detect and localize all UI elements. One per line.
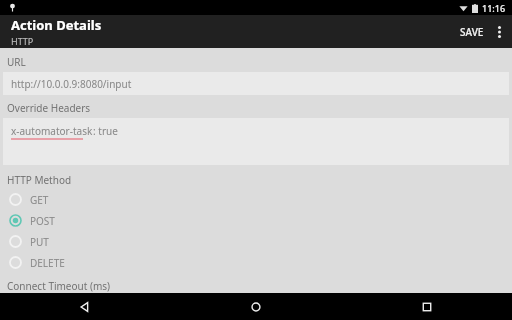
- button[interactable]: x-automator-task: [3, 118, 509, 165]
- button[interactable]: Home: [170, 293, 341, 320]
- staticText: http://10.0.0.9:8080/input: [11, 77, 132, 91]
- staticText: Connect Timeout (ms): [7, 279, 111, 293]
- button[interactable]: More options: [491, 20, 508, 44]
- button[interactable]: DELETE: [0, 252, 512, 273]
- button[interactable]: Recent apps: [341, 293, 512, 320]
- staticText: HTTP: [11, 35, 34, 47]
- button[interactable]: PUT: [0, 231, 512, 252]
- staticText: PUT: [30, 235, 49, 249]
- staticText: Action Details: [11, 16, 102, 34]
- button[interactable]: POST: [0, 210, 512, 231]
- staticText: DELETE: [30, 256, 65, 270]
- button[interactable]: http://10.0.0.9:8080/input: [3, 72, 509, 95]
- button[interactable]: SAVE: [453, 19, 491, 45]
- staticText: GET: [30, 193, 49, 207]
- staticText: Override Headers: [7, 101, 91, 115]
- staticText: SAVE: [460, 25, 484, 39]
- staticText: HTTP Method: [7, 173, 72, 187]
- button[interactable]: Back: [0, 293, 170, 320]
- staticText: 11:16: [482, 2, 506, 14]
- button[interactable]: GET: [0, 189, 512, 210]
- staticText: x-automator-task: [11, 124, 93, 138]
- staticText: POST: [30, 214, 55, 228]
- staticText: : true: [93, 124, 118, 138]
- staticText: URL: [7, 55, 26, 69]
